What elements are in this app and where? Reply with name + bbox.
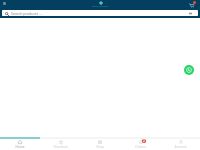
button[interactable]: Chat on WhatsApp [184, 65, 194, 75]
staticText: Home [15, 145, 25, 149]
button[interactable]: 2 [120, 139, 160, 150]
staticText: 2 [143, 139, 145, 143]
staticText: Account [174, 145, 187, 149]
button[interactable]: Checkout [40, 139, 80, 150]
button[interactable]: Home [0, 139, 40, 150]
staticText: Shop [96, 145, 104, 149]
staticText: Checkout [53, 145, 68, 149]
button[interactable]: Menu [3, 2, 6, 5]
staticText: Orders [135, 145, 146, 149]
button[interactable]: Account [160, 139, 200, 150]
staticText: MEDIPHARMA [92, 5, 109, 8]
button[interactable]: Cart [189, 3, 194, 8]
staticText: Search products ... [11, 11, 43, 16]
button[interactable]: Shop [80, 139, 120, 150]
button[interactable]: Search products ... [2, 10, 198, 16]
